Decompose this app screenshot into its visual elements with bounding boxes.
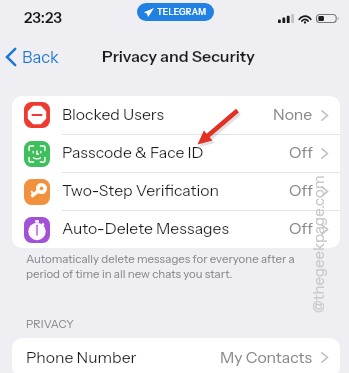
staticText: Off [289, 143, 313, 162]
staticText: Auto-Delete Messages [62, 219, 230, 238]
staticText: Phone Number [26, 348, 137, 367]
staticText: None [273, 105, 313, 124]
staticText: Back [22, 47, 59, 67]
staticText: TELEGRAM [157, 7, 207, 17]
button[interactable]: Phone Number [12, 338, 340, 373]
staticText: Off [289, 219, 313, 238]
button[interactable]: Blocked Users [12, 96, 340, 134]
staticText: PRIVACY [26, 317, 74, 330]
staticText: Privacy and Security [102, 46, 255, 66]
staticText: @thegeekpage.com [309, 175, 327, 313]
button[interactable]: Back [2, 43, 67, 71]
staticText: My Contacts [220, 348, 313, 367]
staticText: 23:23 [24, 8, 62, 26]
button[interactable]: Auto-Delete Messages [12, 211, 340, 248]
button[interactable]: Two-Step Verification [12, 173, 340, 210]
staticText: Automatically delete messages for everyo… [26, 252, 295, 280]
button[interactable]: Passcode & Face ID [12, 135, 340, 172]
staticText: Passcode & Face ID [62, 143, 204, 162]
button[interactable]: Telegram [137, 3, 214, 21]
staticText: Two-Step Verification [62, 181, 219, 200]
staticText: Blocked Users [62, 105, 164, 124]
staticText: Off [289, 181, 313, 200]
